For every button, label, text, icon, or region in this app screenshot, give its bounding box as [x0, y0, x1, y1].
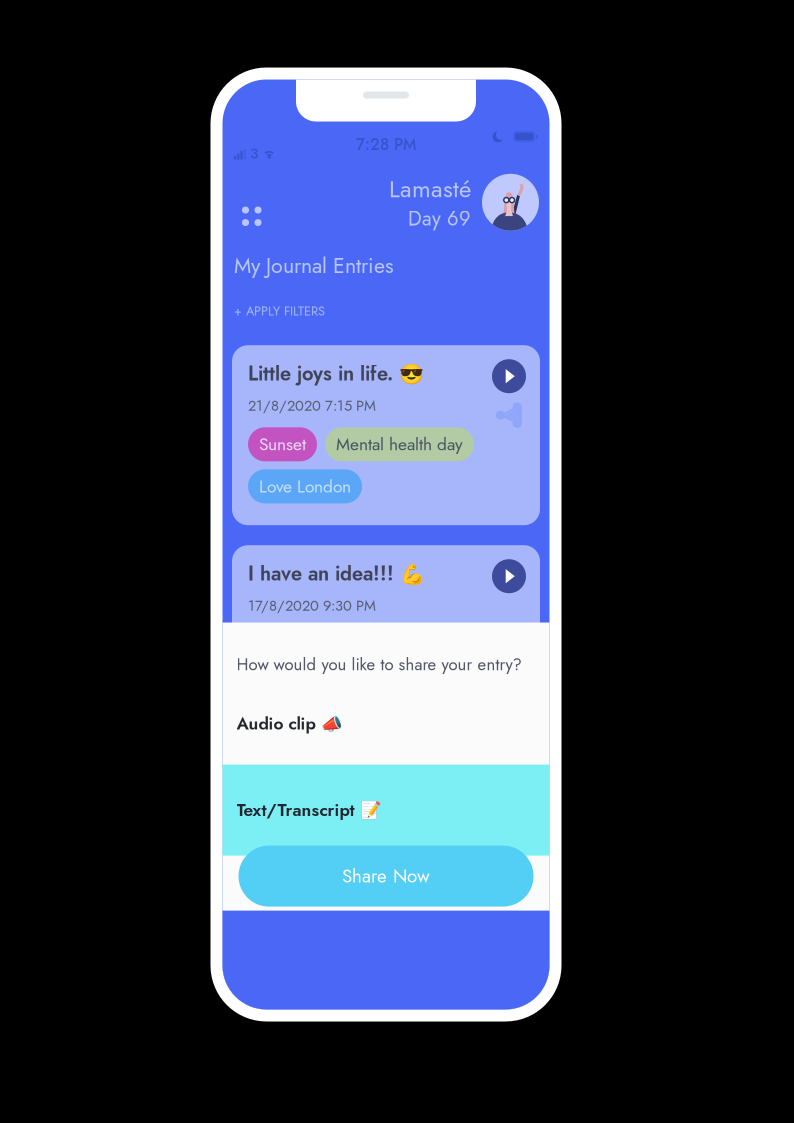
button[interactable]: Sunset — [248, 427, 317, 461]
staticText: Day 69 — [408, 204, 471, 233]
staticText: 7:28 PM — [356, 133, 416, 156]
staticText: Little joys in life. 😎 — [248, 359, 424, 388]
staticText: Mental health day — [336, 432, 463, 457]
button[interactable]: Share Now — [238, 846, 533, 907]
button[interactable]: Text/Transcript 📝 — [222, 765, 549, 856]
button[interactable]: Profile — [482, 174, 539, 231]
button[interactable]: + APPLY FILTERS — [234, 302, 325, 320]
staticText: How would you like to share your entry? — [236, 652, 521, 677]
staticText: Lamasté — [389, 171, 471, 206]
staticText: 3 — [250, 143, 258, 164]
staticText: Share Now — [342, 863, 430, 890]
staticText: Audio clip 📣 — [236, 711, 342, 736]
button[interactable]: Menu — [233, 183, 270, 221]
staticText: Sunset — [259, 432, 306, 457]
button[interactable]: Mental health day — [325, 427, 474, 461]
staticText: + APPLY FILTERS — [234, 302, 325, 320]
button[interactable]: Love London — [248, 469, 362, 503]
staticText: My Journal Entries — [234, 250, 394, 281]
button[interactable]: Play entry — [490, 557, 528, 595]
button[interactable]: Audio clip 📣 — [222, 709, 549, 739]
staticText: 21/8/2020 7:15 PM — [248, 395, 376, 416]
button[interactable]: Play entry — [490, 357, 528, 395]
button[interactable]: Share entry — [490, 401, 528, 429]
staticText: Love London — [259, 474, 351, 499]
staticText: I have an idea!!! 💪 — [248, 559, 425, 588]
staticText: 17/8/2020 9:30 PM — [248, 595, 376, 616]
staticText: Text/Transcript 📝 — [236, 798, 381, 823]
